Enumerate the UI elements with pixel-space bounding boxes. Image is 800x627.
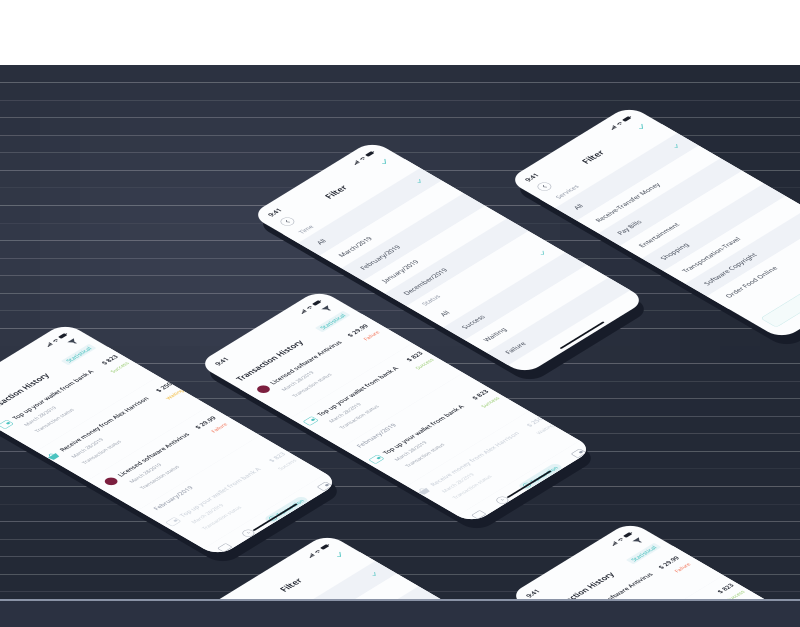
button[interactable]: Entertainment	[0, 499, 560, 594]
button[interactable]: February/2019	[0, 403, 560, 499]
button[interactable]: Shopping	[0, 594, 560, 627]
staticText: Entertainment	[42, 530, 214, 563]
staticText: March 28/2019	[57, 501, 194, 527]
button[interactable]: March/2019	[0, 308, 560, 403]
staticText: Pay Bills	[42, 434, 140, 468]
staticText: $ 823	[484, 224, 546, 256]
staticText: March/2019	[42, 339, 182, 372]
button[interactable]: Pay Bills	[0, 403, 560, 499]
staticText: March 28/2019	[74, 501, 211, 527]
button[interactable]: Pay Bills	[0, 403, 560, 499]
button[interactable]: Statistical	[401, 134, 530, 167]
staticText: Transaction status	[90, 324, 260, 351]
staticText: Transaction status	[74, 324, 244, 351]
staticText: Receive-Transfer Money	[42, 339, 325, 372]
button[interactable]: Receive-Transfer Money	[0, 308, 560, 403]
staticText: February/2019	[42, 434, 213, 468]
staticText: Top up your wallet from bank A	[74, 448, 433, 480]
staticText: Success	[472, 501, 546, 527]
button[interactable]: Receive money from Alex Harrison	[0, 412, 560, 627]
button[interactable]: All	[0, 212, 560, 308]
staticText: Waiting	[492, 501, 562, 527]
staticText: Success	[472, 277, 546, 303]
staticText: March 28/2019	[74, 501, 211, 527]
staticText: Statistical	[413, 136, 518, 166]
staticText: Failure	[467, 277, 529, 303]
staticText: Receive money from Alex Harrison	[57, 448, 453, 480]
staticText: Transaction status	[57, 548, 227, 575]
button[interactable]: January/2019	[0, 499, 560, 594]
staticText: January/2019	[42, 530, 197, 563]
staticText: $ 29.99	[446, 224, 529, 256]
staticText: Transaction status	[74, 548, 244, 575]
staticText: Licensed software Antivirus	[90, 224, 407, 256]
staticText: $ 823	[484, 448, 546, 480]
button[interactable]: Entertainment	[0, 499, 560, 594]
button[interactable]: Top up your wallet from bank A	[0, 188, 560, 412]
staticText: Success	[472, 501, 546, 527]
staticText: Transaction status	[74, 548, 244, 575]
staticText: Top up your wallet from bank A	[74, 224, 433, 256]
staticText: $ 29.99	[446, 224, 529, 256]
staticText: Statistical	[413, 136, 518, 166]
staticText: Failure	[467, 277, 529, 303]
staticText: Transaction status	[90, 324, 260, 351]
staticText: Entertainment	[42, 530, 214, 563]
staticText: Statistical	[413, 136, 518, 166]
button[interactable]: Licensed software Antivirus	[0, 188, 560, 412]
button[interactable]: Shopping	[0, 594, 560, 627]
staticText: Top up your wallet from bank A	[74, 448, 433, 480]
button[interactable]: December/2019	[0, 594, 560, 627]
staticText: $ 823	[484, 448, 546, 480]
button[interactable]: Statistical	[401, 134, 530, 167]
button[interactable]: Receive-Transfer Money	[0, 308, 560, 403]
button[interactable]: Top up your wallet from bank A	[0, 412, 560, 627]
button[interactable]: Licensed software Antivirus	[0, 188, 560, 412]
staticText: $ 250	[500, 448, 562, 480]
staticText: Receive-Transfer Money	[42, 339, 325, 372]
staticText: Licensed software Antivirus	[90, 224, 407, 256]
button[interactable]: All	[0, 212, 560, 308]
button[interactable]: Statistical	[401, 134, 530, 167]
button[interactable]: All	[0, 212, 560, 308]
staticText: Pay Bills	[42, 434, 140, 468]
button[interactable]: Top up your wallet from bank A	[0, 412, 560, 627]
